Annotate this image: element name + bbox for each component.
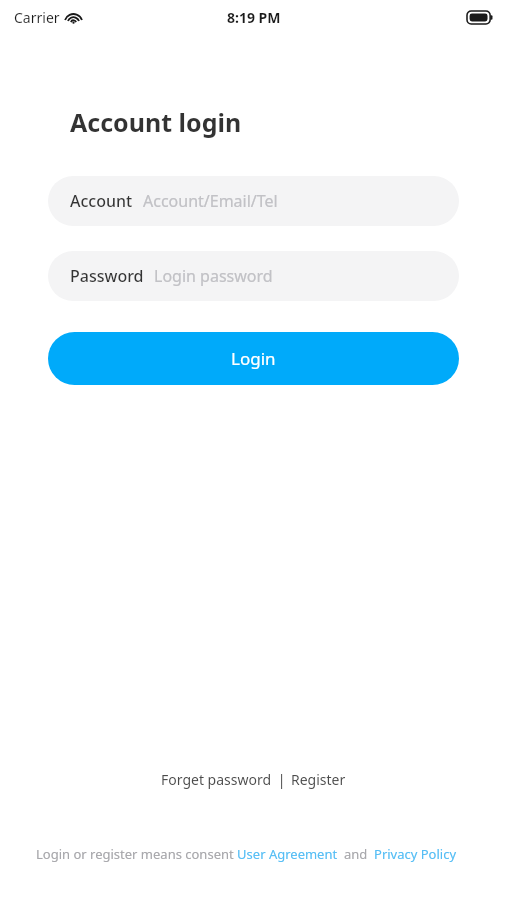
button[interactable]: Account [48, 176, 459, 226]
staticText: Forget password [161, 770, 272, 789]
staticText: Account login [70, 105, 242, 139]
button[interactable]: Login [48, 332, 459, 385]
button[interactable]: Register [289, 766, 348, 793]
button[interactable]: Forget password [159, 766, 274, 793]
staticText: Register [291, 770, 346, 789]
staticText: Carrier [14, 8, 60, 27]
staticText: Login [231, 347, 276, 370]
staticText: Login password [154, 265, 273, 287]
staticText: Account/Email/Tel [143, 190, 278, 212]
staticText: 8:19 PM [227, 8, 281, 27]
staticText: Account [70, 190, 133, 212]
staticText: Password [70, 265, 144, 287]
button[interactable]: Password [48, 251, 459, 301]
button[interactable]: Login or register means consent User Agr… [36, 845, 471, 863]
staticText: | [274, 770, 289, 789]
